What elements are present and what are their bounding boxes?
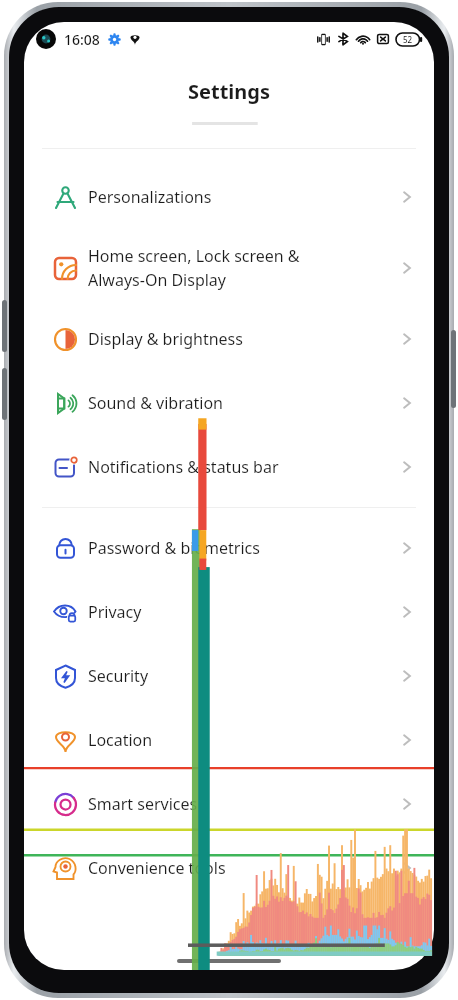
staticText: Location	[88, 729, 398, 751]
button[interactable]: Home screen, Lock screen & Always-On Dis…	[24, 229, 434, 307]
button[interactable]: Password & biometrics	[24, 516, 434, 580]
staticText: Sound & vibration	[88, 392, 398, 414]
staticText: Security	[88, 665, 398, 687]
staticText: 52	[403, 34, 413, 45]
staticText: Home screen, Lock screen & Always-On Dis…	[88, 245, 398, 291]
staticText: 16:08	[64, 30, 100, 49]
staticText: Settings	[24, 78, 434, 105]
staticText: Convenience tools	[88, 857, 398, 879]
staticText: Privacy	[88, 601, 398, 623]
button[interactable]: Sound & vibration	[24, 371, 434, 435]
button[interactable]: Convenience tools	[24, 836, 434, 900]
button[interactable]: Display & brightness	[24, 307, 434, 371]
staticText: Personalizations	[88, 186, 398, 208]
button[interactable]: Notifications & status bar	[24, 435, 434, 499]
button[interactable]: Smart services	[24, 772, 434, 836]
button[interactable]: Personalizations	[24, 165, 434, 229]
button[interactable]: Security	[24, 644, 434, 708]
staticText: Display & brightness	[88, 328, 398, 350]
button[interactable]: Privacy	[24, 580, 434, 644]
staticText: Smart services	[88, 793, 398, 815]
staticText: Notifications & status bar	[88, 456, 398, 478]
staticText: Password & biometrics	[88, 537, 398, 559]
button[interactable]: Location	[24, 708, 434, 772]
